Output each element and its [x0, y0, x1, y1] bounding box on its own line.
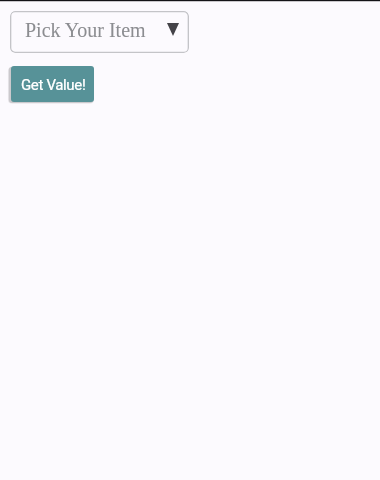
other: Open dropdown [167, 23, 179, 36]
button[interactable]: Get Value! [11, 66, 94, 102]
staticText: Pick Your Item [25, 19, 146, 41]
button[interactable]: Pick Your Item [10, 11, 189, 53]
staticText: Get Value! [21, 76, 86, 94]
